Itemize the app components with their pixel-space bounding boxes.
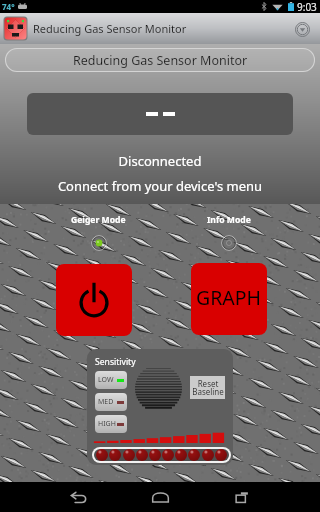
staticText: LOW [98, 375, 114, 385]
button[interactable]: Recent apps [221, 482, 263, 512]
staticText: MED [98, 397, 114, 407]
button[interactable]: Power [56, 264, 132, 336]
staticText: Info Mode [207, 214, 251, 226]
button[interactable]: MED [95, 393, 127, 411]
staticText: Disconnected [0, 152, 320, 170]
button[interactable]: Back [57, 482, 99, 512]
button[interactable]: More options [289, 16, 315, 42]
staticText: HIGH [98, 419, 116, 429]
staticText: Geiger Mode [71, 214, 126, 226]
staticText: 9:03 [297, 0, 317, 13]
button[interactable]: LOW [95, 371, 127, 389]
staticText: Reducing Gas Sensor Monitor [33, 21, 187, 36]
button[interactable]: Home [139, 482, 181, 512]
button[interactable]: Geiger Mode [71, 214, 126, 251]
button[interactable]: GRAPH [191, 263, 267, 335]
staticText: Reset Baseline [192, 378, 224, 397]
staticText: Reducing Gas Sensor Monitor [73, 52, 248, 69]
staticText: Connect from your device's menu [0, 177, 320, 195]
button[interactable]: Reset Baseline [190, 376, 225, 399]
staticText: GRAPH [196, 284, 262, 311]
button[interactable]: HIGH [95, 415, 127, 433]
staticText: Sensitivity [95, 356, 136, 368]
button[interactable]: Info Mode [207, 214, 251, 251]
staticText: 74° [2, 1, 15, 12]
